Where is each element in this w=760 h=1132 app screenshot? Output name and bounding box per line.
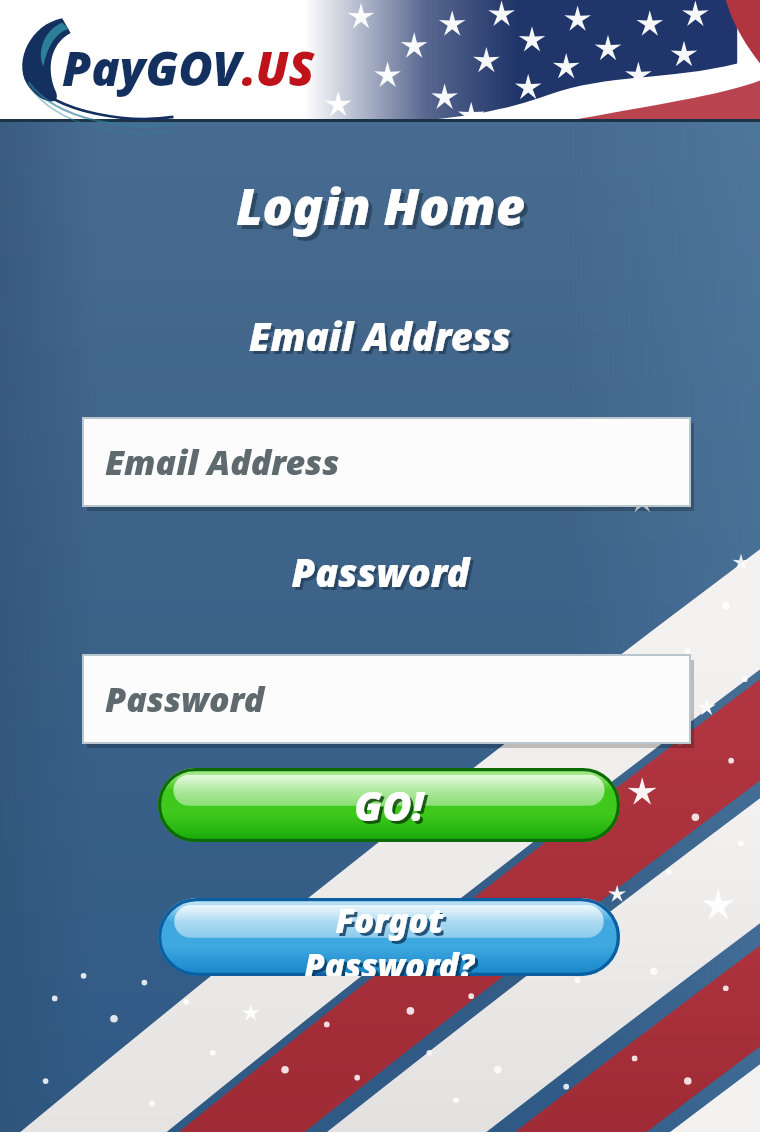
button[interactable]: Email Address <box>83 418 690 506</box>
staticText: GO! <box>354 778 424 832</box>
staticText: Email Address <box>249 310 511 362</box>
staticText: Email Address <box>105 439 340 485</box>
staticText: GO! <box>357 781 427 835</box>
button[interactable]: GO <box>158 768 620 842</box>
staticText: Password? <box>304 943 475 976</box>
staticText: Forgot <box>338 901 447 946</box>
staticText: .US <box>242 36 315 100</box>
staticText: Login Home <box>236 172 525 240</box>
staticText: PayGOV <box>62 36 242 100</box>
staticText: Login Home <box>240 176 529 244</box>
staticText: Email Address <box>252 313 514 365</box>
button[interactable]: Forgot Password <box>158 898 620 976</box>
button[interactable]: PayGOV.US home <box>62 36 315 100</box>
staticText: Password <box>294 549 473 601</box>
staticText: Password <box>291 546 470 598</box>
staticText: Forgot <box>335 898 444 943</box>
staticText: Password? <box>307 946 478 976</box>
button[interactable]: Password <box>83 655 690 743</box>
staticText: Password <box>105 676 265 722</box>
